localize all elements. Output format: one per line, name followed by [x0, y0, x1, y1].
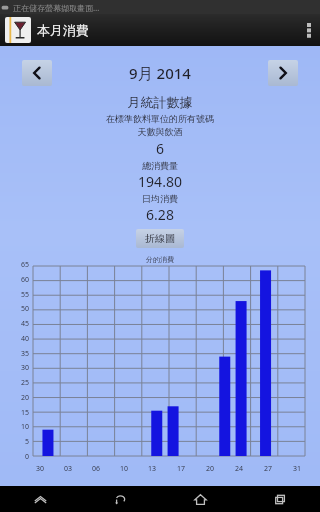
staticText: 10: [21, 422, 30, 432]
button[interactable]: Next month: [268, 60, 298, 86]
button[interactable]: 折線圖: [136, 229, 184, 248]
staticText: 月統計數據: [0, 94, 320, 110]
button[interactable]: Back: [80, 486, 160, 512]
staticText: 30: [21, 363, 30, 373]
staticText: 17: [177, 464, 186, 474]
staticText: 06: [92, 464, 101, 474]
staticText: 0: [25, 452, 30, 462]
staticText: 分的消費: [146, 255, 174, 264]
staticText: 折線圖: [145, 232, 175, 245]
staticText: 20: [21, 393, 30, 403]
staticText: 正在儲存螢幕擷取畫面…: [13, 2, 100, 13]
staticText: 日均消費: [0, 193, 320, 204]
button[interactable]: Menu: [0, 486, 80, 512]
staticText: 03: [64, 464, 73, 474]
staticText: 40: [21, 334, 30, 344]
staticText: 194.80: [0, 172, 320, 191]
staticText: 在標準飲料單位的所有號碼: [0, 113, 320, 124]
staticText: 20: [206, 464, 215, 474]
staticText: 35: [21, 349, 30, 359]
staticText: 24: [235, 464, 244, 474]
staticText: 13: [148, 464, 157, 474]
staticText: 天數與飲酒: [0, 126, 320, 137]
staticText: 9月 2014: [129, 63, 191, 83]
staticText: 27: [264, 464, 273, 474]
staticText: 30: [36, 464, 45, 474]
staticText: 5: [25, 437, 30, 447]
staticText: 25: [21, 378, 30, 388]
button[interactable]: More options: [298, 14, 320, 46]
staticText: 31: [293, 464, 302, 474]
button[interactable]: Previous month: [22, 60, 52, 86]
staticText: 65: [21, 260, 30, 270]
staticText: 總消費量: [0, 160, 320, 171]
staticText: 55: [21, 290, 30, 300]
staticText: 6: [0, 139, 320, 158]
staticText: 10: [120, 464, 129, 474]
staticText: 45: [21, 319, 30, 329]
staticText: 15: [21, 408, 30, 418]
button[interactable]: Home: [160, 486, 240, 512]
button[interactable]: App icon: [5, 17, 31, 43]
staticText: 本月消費: [37, 22, 89, 38]
button[interactable]: Recents: [240, 486, 320, 512]
staticText: 50: [21, 304, 30, 314]
staticText: 60: [21, 275, 30, 285]
staticText: 6.28: [0, 205, 320, 224]
